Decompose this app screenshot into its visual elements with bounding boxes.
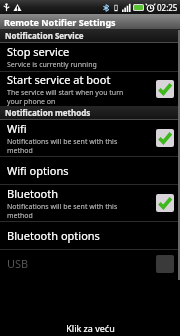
staticText: Wifi <box>7 121 27 136</box>
staticText: USB <box>7 256 29 271</box>
staticText: Service is currently running <box>7 60 97 70</box>
staticText: The service will start when you turn you… <box>7 88 124 106</box>
staticText: Notification Service <box>5 30 84 41</box>
staticText: Bluetooth <box>7 186 59 201</box>
staticText: Stop service <box>7 44 70 59</box>
button[interactable]: Wifi options <box>0 157 180 184</box>
button[interactable]: Bluetooth <box>0 185 180 221</box>
button[interactable]: Start service at boot <box>0 72 180 106</box>
staticText: Klik za veću <box>66 322 115 334</box>
button[interactable]: Wifi <box>0 120 180 156</box>
staticText: Wifi options <box>7 163 69 178</box>
staticText: Notification methods <box>5 107 91 118</box>
staticText: 02:25 <box>157 2 178 13</box>
button[interactable]: USB <box>0 250 180 277</box>
staticText: Start service at boot <box>7 72 111 87</box>
staticText: Notifications will be sent with this met… <box>7 202 118 220</box>
staticText: Remote Notifier Settings <box>4 16 116 28</box>
staticText: Bluetooth options <box>7 228 100 243</box>
button[interactable]: Bluetooth options <box>0 222 180 249</box>
button[interactable]: Stop service <box>0 43 180 71</box>
staticText: Notifications will be sent with this met… <box>7 137 118 155</box>
